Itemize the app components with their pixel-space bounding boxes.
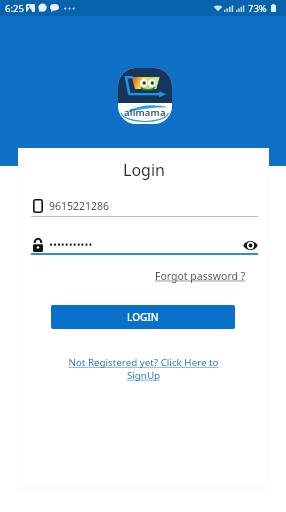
- button[interactable]: •••••••••••: [33, 236, 258, 253]
- staticText: •••••••••••: [49, 238, 93, 252]
- staticText: Login: [123, 159, 165, 181]
- staticText: 9615221286: [49, 199, 110, 213]
- staticText: 6:25: [5, 2, 24, 15]
- button[interactable]: Forgot password ?: [155, 269, 246, 283]
- staticText: Forgot password ?: [155, 269, 246, 283]
- button[interactable]: LOGIN: [51, 305, 235, 329]
- button[interactable]: 9615221286: [33, 196, 258, 215]
- staticText: Not Registered yet? Click Here to SignUp: [58, 356, 229, 382]
- button[interactable]: Show password: [242, 238, 258, 252]
- staticText: alimama: [124, 106, 166, 119]
- staticText: LOGIN: [127, 310, 159, 324]
- staticText: 73%: [248, 2, 267, 15]
- button[interactable]: Not Registered yet? Click Here to SignUp: [58, 356, 229, 382]
